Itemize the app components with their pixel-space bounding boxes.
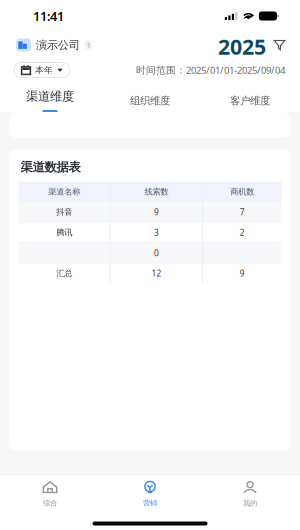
button[interactable]: 综合 <box>0 475 100 517</box>
button[interactable]: 营销 <box>100 475 200 517</box>
staticText: 线索数 <box>144 186 168 197</box>
button[interactable]: 演示公司 <box>16 34 92 56</box>
staticText: 演示公司 <box>36 38 80 52</box>
staticText: 12 <box>151 268 161 279</box>
button[interactable]: 我的 <box>200 475 300 517</box>
staticText: 3 <box>154 227 159 238</box>
button[interactable]: 客户维度 <box>200 82 300 112</box>
button[interactable]: 渠道维度 <box>0 82 100 112</box>
staticText: 2025 <box>218 32 266 61</box>
staticText: 本年 <box>35 64 53 75</box>
staticText: 营销 <box>143 498 157 508</box>
staticText: 9 <box>154 206 159 218</box>
staticText: 商机数 <box>230 186 254 197</box>
staticText: 1 <box>86 40 90 50</box>
staticText: 7 <box>240 206 245 218</box>
staticText: 11:41 <box>33 7 64 25</box>
staticText: 综合 <box>43 498 57 508</box>
staticText: 2 <box>240 227 245 238</box>
staticText: 汇总 <box>56 268 72 278</box>
staticText: 客户维度 <box>230 94 270 107</box>
button[interactable]: 组织维度 <box>100 82 200 112</box>
button[interactable]: 本年 <box>14 62 70 77</box>
staticText: 渠道维度 <box>26 89 74 104</box>
staticText: 抖音 <box>56 207 72 217</box>
staticText: 0 <box>154 247 159 259</box>
staticText: 渠道数据表 <box>20 159 80 175</box>
staticText: 我的 <box>243 499 257 508</box>
staticText: 9 <box>240 268 245 279</box>
button[interactable]: 筛选 <box>271 36 288 53</box>
staticText: 组织维度 <box>130 94 170 107</box>
staticText: 腾讯 <box>56 227 72 238</box>
staticText: 渠道名称 <box>48 186 80 197</box>
staticText: 时间范围：2025/01/01-2025/09/04 <box>136 63 285 77</box>
